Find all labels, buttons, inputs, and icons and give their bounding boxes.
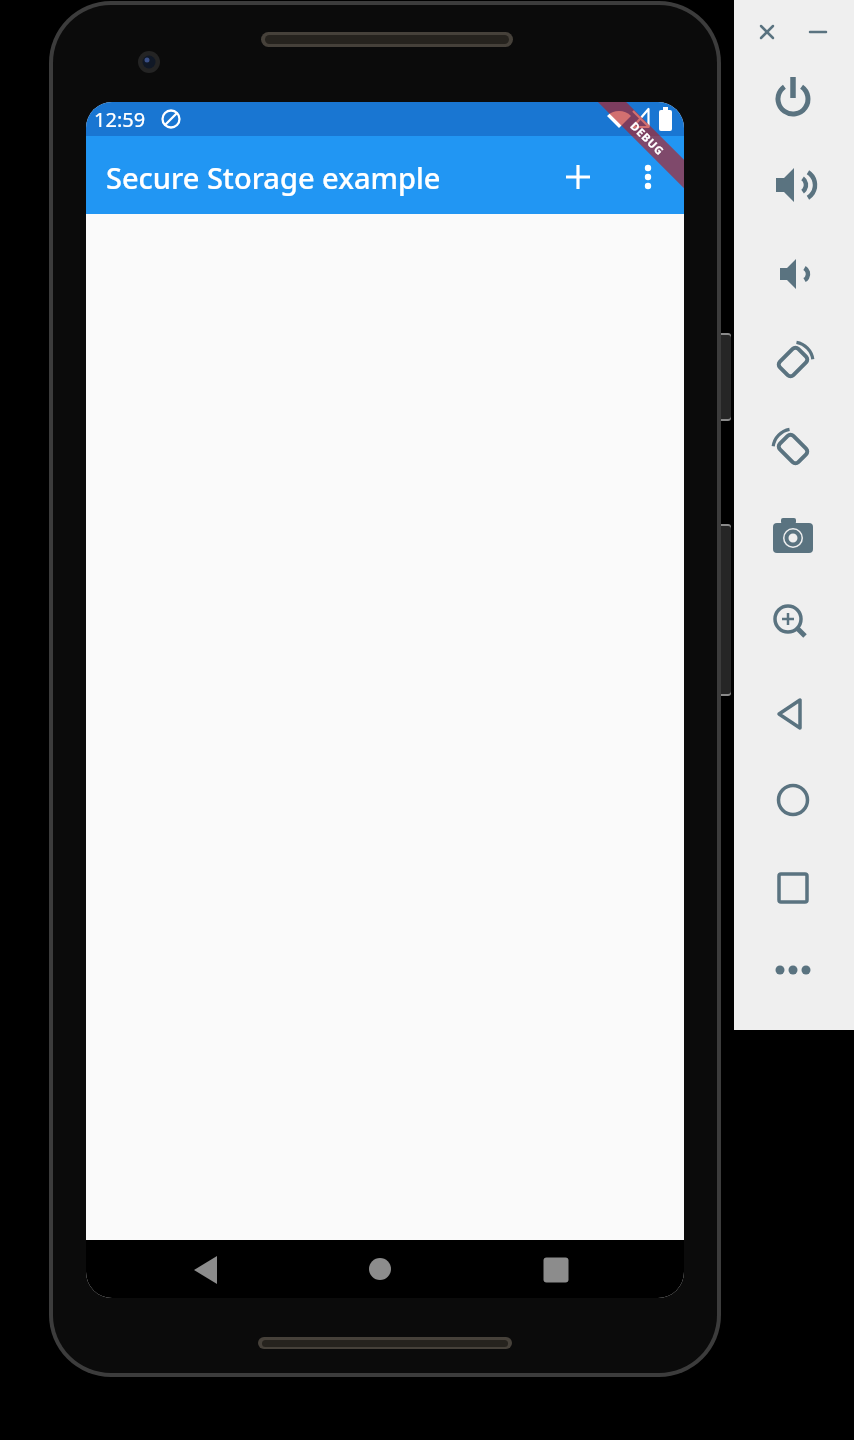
button[interactable] bbox=[769, 776, 817, 824]
button[interactable] bbox=[183, 1246, 231, 1294]
button[interactable] bbox=[769, 73, 817, 121]
button[interactable] bbox=[806, 20, 830, 44]
button[interactable] bbox=[356, 1245, 404, 1293]
staticText: Secure Storage example bbox=[106, 158, 441, 197]
button[interactable] bbox=[769, 690, 817, 738]
button[interactable] bbox=[769, 946, 817, 994]
button[interactable] bbox=[769, 864, 817, 912]
button[interactable] bbox=[624, 153, 672, 201]
staticText: 12:59 bbox=[94, 106, 146, 133]
button[interactable] bbox=[769, 600, 817, 648]
staticText: DEBUG bbox=[627, 118, 668, 158]
button[interactable] bbox=[554, 153, 602, 201]
button[interactable] bbox=[755, 20, 779, 44]
button[interactable] bbox=[769, 513, 817, 561]
button[interactable] bbox=[769, 161, 817, 209]
button[interactable] bbox=[769, 425, 817, 473]
button[interactable] bbox=[532, 1246, 580, 1294]
button[interactable] bbox=[769, 250, 817, 298]
button[interactable] bbox=[769, 338, 817, 386]
